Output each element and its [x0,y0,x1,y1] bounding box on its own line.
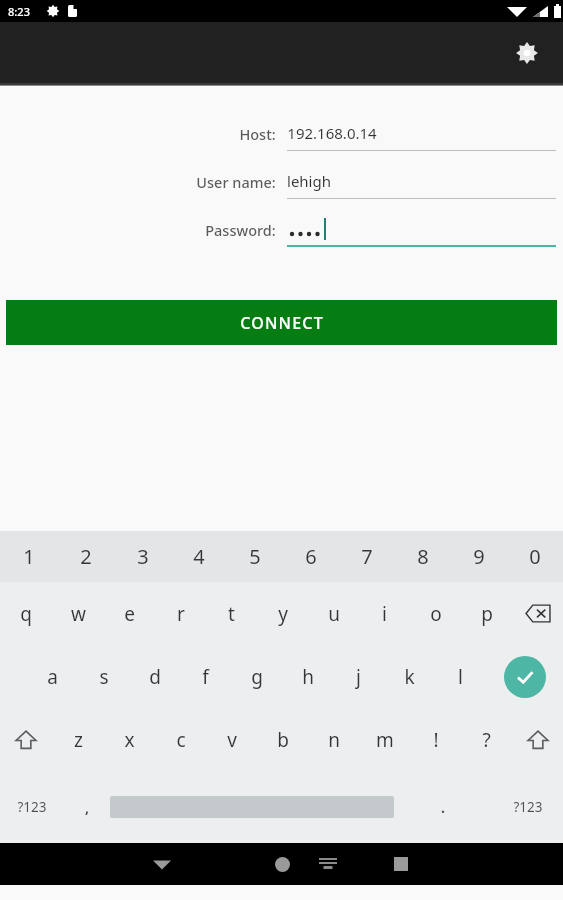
staticText: d [149,664,161,690]
button[interactable]: 3 [114,531,171,582]
button[interactable]: 6 [283,531,339,582]
button[interactable]: CONNECT [6,300,557,345]
staticText: t [228,601,235,627]
staticText: 192.168.0.14 [287,123,377,143]
staticText: v [227,727,237,753]
staticText: h [302,664,314,690]
button[interactable]: 2 [57,531,114,582]
staticText: CONNECT [240,312,324,334]
staticText: g [251,664,263,690]
staticText: ! [433,727,439,753]
staticText: c [176,727,186,753]
button[interactable]: Settings [503,29,551,77]
button[interactable]: t [206,582,257,645]
button[interactable]: p [461,582,512,645]
staticText: r [177,601,185,627]
staticText: o [430,601,442,627]
button[interactable]: ?123 [0,771,64,843]
staticText: w [71,601,86,627]
button[interactable]: 4 [171,531,227,582]
button[interactable] [287,214,556,254]
staticText: Host: [239,124,276,144]
staticText: lehigh [287,171,331,191]
button[interactable]: Shift [512,708,563,771]
staticText: a [47,664,58,690]
staticText: y [278,601,288,627]
staticText: b [277,727,289,753]
button[interactable]: , [64,771,110,843]
staticText: ? [482,727,491,753]
button[interactable]: x [104,708,155,771]
button[interactable]: f [180,645,231,708]
button[interactable]: ! [410,708,461,771]
button[interactable]: 9 [451,531,507,582]
button[interactable]: 192.168.0.14 [287,118,556,158]
button[interactable]: d [129,645,180,708]
button[interactable]: u [308,582,359,645]
staticText: ?123 [17,798,47,816]
button[interactable]: g [231,645,282,708]
button[interactable]: c [155,708,206,771]
button[interactable]: Home [256,843,308,885]
button[interactable]: y [257,582,308,645]
staticText: l [458,664,463,690]
button[interactable]: z [52,708,104,771]
button[interactable]: l [435,645,486,708]
staticText: 1 [23,543,35,570]
button[interactable]: k [384,645,435,708]
staticText: k [404,664,415,690]
staticText: . [441,798,445,817]
staticText: j [356,664,361,690]
staticText: e [124,601,135,627]
button[interactable]: r [155,582,206,645]
button[interactable]: Back [136,843,188,885]
button[interactable]: Enter [486,645,563,708]
staticText: 0 [529,543,541,570]
button[interactable]: ? [461,708,512,771]
button[interactable]: Shift [0,708,52,771]
button[interactable]: q [0,582,52,645]
staticText: , [85,798,89,817]
button[interactable]: . [394,771,492,843]
staticText: User name: [196,172,276,192]
button[interactable]: Space [110,771,394,843]
button[interactable]: Recents [375,843,427,885]
button[interactable]: s [78,645,129,708]
staticText: 5 [249,543,261,570]
staticText: i [382,601,387,627]
button[interactable]: m [359,708,410,771]
button[interactable]: h [282,645,333,708]
button[interactable]: i [359,582,410,645]
staticText: x [124,727,135,753]
button[interactable]: 5 [227,531,283,582]
button[interactable]: 8 [395,531,451,582]
button[interactable]: j [333,645,384,708]
staticText: 9 [473,543,485,570]
staticText: Password: [205,220,276,240]
button[interactable]: b [257,708,308,771]
button[interactable]: Backspace [512,582,563,645]
button[interactable]: 7 [339,531,395,582]
button[interactable]: a [27,645,78,708]
staticText: 3 [137,543,149,570]
staticText: n [328,727,340,753]
staticText: 7 [361,543,373,570]
button[interactable]: n [308,708,359,771]
staticText: s [99,664,109,690]
staticText: 2 [80,543,92,570]
button[interactable]: o [410,582,461,645]
button[interactable]: 1 [0,531,57,582]
staticText: m [376,727,394,753]
button[interactable]: lehigh [287,166,556,206]
button[interactable]: 0 [507,531,563,582]
staticText: f [202,664,209,690]
button[interactable]: w [52,582,104,645]
staticText: 8:23 [8,4,30,19]
button[interactable]: e [104,582,155,645]
staticText: p [481,601,493,627]
staticText: ?123 [513,798,543,816]
button[interactable]: ?123 [492,771,563,843]
staticText: u [328,601,340,627]
staticText: q [20,601,32,627]
button[interactable]: v [206,708,257,771]
